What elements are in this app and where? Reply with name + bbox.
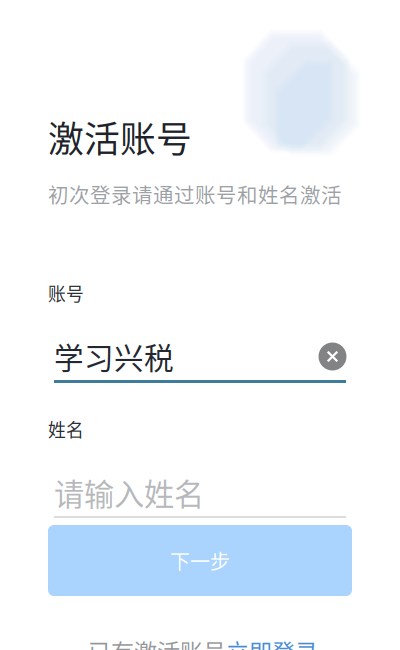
button[interactable]: Clear (312, 336, 352, 376)
button[interactable]: 下一步 (48, 525, 352, 596)
staticText: 激活账号 (48, 111, 192, 163)
staticText: 账号 (48, 280, 84, 306)
staticText: 请输入姓名 (54, 471, 204, 514)
staticText: 下一步 (170, 546, 230, 575)
staticText: 立即登录 (226, 634, 318, 650)
staticText: 学习兴税 (54, 335, 174, 377)
staticText: 已有激活账号 (88, 634, 226, 650)
staticText: 初次登录请通过账号和姓名激活 (48, 179, 342, 209)
staticText: 姓名 (48, 416, 84, 442)
button[interactable]: 立即登录 (226, 634, 318, 650)
